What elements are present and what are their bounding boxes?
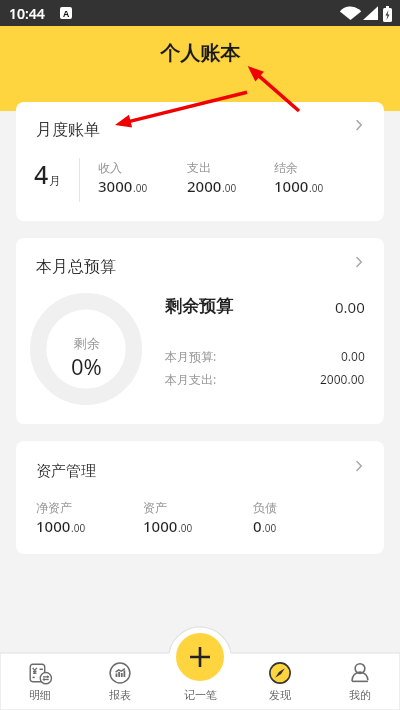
staticText: 4 <box>34 157 49 191</box>
staticText: 3000 <box>98 176 133 196</box>
staticText: A <box>63 7 70 19</box>
staticText: 0 <box>253 516 262 536</box>
staticText: 0.00 <box>341 348 365 364</box>
staticText: 2000 <box>187 176 222 196</box>
button[interactable]: 记一笔 <box>176 633 224 681</box>
staticText: 1000 <box>143 516 178 536</box>
staticText: .00 <box>133 181 148 195</box>
staticText: 支出 <box>187 160 211 175</box>
staticText: 个人账本 <box>160 41 240 66</box>
staticText: 0% <box>71 351 102 381</box>
staticText: .00 <box>178 521 193 535</box>
staticText: 10:44 <box>9 4 45 23</box>
staticText: 结余 <box>274 160 298 175</box>
staticText: 本月支出: <box>165 371 217 387</box>
staticText: 资产 <box>143 500 167 515</box>
staticText: 0.00 <box>335 297 365 317</box>
staticText: 我的 <box>349 688 371 702</box>
staticText: .00 <box>262 521 277 535</box>
staticText: .00 <box>71 521 86 535</box>
button[interactable]: 本月总预算 <box>16 238 384 424</box>
staticText: 1000 <box>274 176 309 196</box>
staticText: 资产管理 <box>36 462 96 481</box>
staticText: 剩余预算 <box>165 296 233 317</box>
button[interactable]: 资产管理 <box>16 441 384 554</box>
button[interactable]: 报表 <box>80 654 160 710</box>
staticText: 本月预算: <box>165 348 217 364</box>
staticText: 本月总预算 <box>36 257 116 277</box>
button[interactable]: 月度账单 <box>16 102 384 221</box>
staticText: .00 <box>222 181 237 195</box>
staticText: 收入 <box>98 160 122 175</box>
staticText: .00 <box>309 181 324 195</box>
staticText: 剩余 <box>74 335 100 351</box>
staticText: 2000.00 <box>320 371 365 387</box>
staticText: 明细 <box>29 688 51 702</box>
staticText: 记一笔 <box>184 688 217 702</box>
button[interactable]: 明细 <box>0 654 80 710</box>
button[interactable]: 我的 <box>320 654 400 710</box>
staticText: 发现 <box>269 688 291 702</box>
staticText: 1000 <box>36 516 71 536</box>
staticText: 月度账单 <box>36 120 100 140</box>
staticText: 净资产 <box>36 500 72 515</box>
button[interactable]: 记一笔 <box>160 654 240 710</box>
staticText: 月 <box>49 173 61 188</box>
staticText: 报表 <box>109 688 131 702</box>
button[interactable]: 发现 <box>240 654 320 710</box>
staticText: 负债 <box>253 500 277 515</box>
